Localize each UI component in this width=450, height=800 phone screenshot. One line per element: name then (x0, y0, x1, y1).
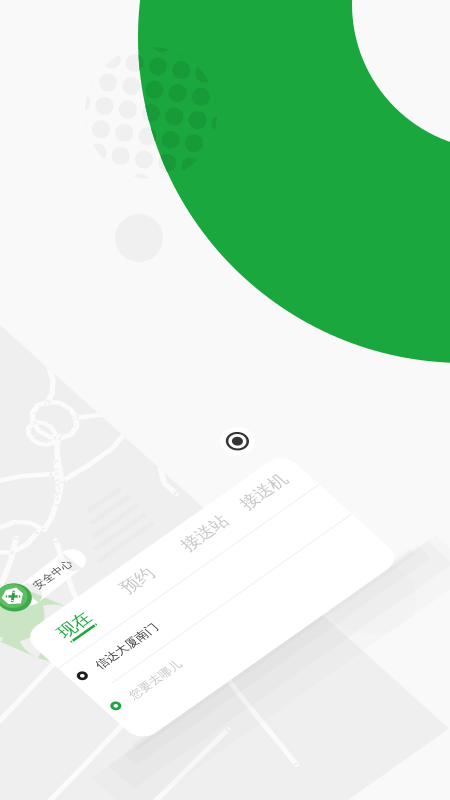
button[interactable]: 现在 (0, 0, 319, 160)
button[interactable]: 您要去哪儿 (0, 0, 319, 160)
button[interactable]: 信达大厦南门 (0, 0, 319, 160)
button[interactable]: 预约 (0, 0, 319, 160)
button[interactable]: 接送机 (0, 0, 319, 160)
button[interactable]: Re-center map (0, 0, 319, 160)
button[interactable]: 接送站 (0, 0, 319, 160)
button[interactable]: Safety Centre (0, 0, 319, 160)
